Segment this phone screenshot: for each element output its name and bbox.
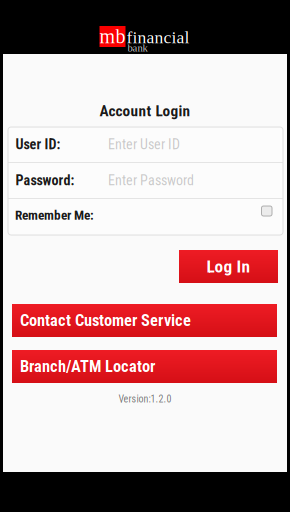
staticText: mb <box>99 25 125 47</box>
button[interactable]: User ID: <box>8 127 283 162</box>
staticText: Log In <box>206 256 250 277</box>
button[interactable]: Remember Me: <box>8 199 283 235</box>
staticText: Branch/ATM Locator <box>20 357 155 376</box>
button[interactable]: Log In <box>179 250 278 283</box>
button[interactable]: Password: <box>8 163 283 198</box>
staticText: Version:1.2.0 <box>118 393 171 405</box>
button[interactable]: Contact Customer Service <box>12 304 277 337</box>
staticText: Contact Customer Service <box>20 311 191 330</box>
button[interactable]: Branch/ATM Locator <box>12 350 277 383</box>
staticText: bank <box>127 42 147 54</box>
staticText: Enter Password <box>108 172 194 189</box>
staticText: financial <box>126 27 189 47</box>
staticText: Remember Me: <box>15 207 94 223</box>
staticText: Password: <box>15 172 74 189</box>
staticText: Account Login <box>99 102 190 120</box>
staticText: User ID: <box>15 136 60 153</box>
staticText: Enter User ID <box>108 136 180 153</box>
